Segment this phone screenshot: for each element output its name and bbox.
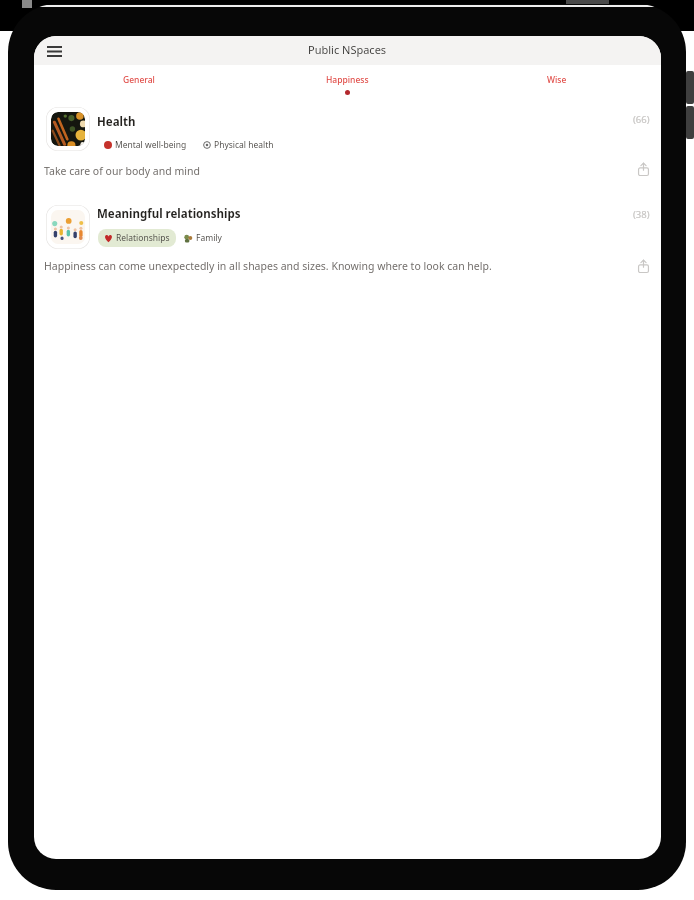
staticText: Happiness can come unexpectedly in all s… xyxy=(44,259,492,273)
button[interactable]: General xyxy=(34,65,243,96)
button[interactable]: Meaningful relationships xyxy=(34,199,661,316)
staticText: Physical health xyxy=(214,139,274,151)
staticText: Family xyxy=(196,232,222,244)
button[interactable]: Health xyxy=(34,103,661,199)
button[interactable]: Wise xyxy=(452,65,661,96)
staticText: Wise xyxy=(547,74,567,86)
button[interactable] xyxy=(634,160,652,178)
staticText: Happiness xyxy=(326,74,369,86)
staticText: Mental well-being xyxy=(115,139,187,151)
staticText: Meaningful relationships xyxy=(97,206,241,222)
button[interactable]: Happiness xyxy=(243,65,452,96)
staticText: Relationships xyxy=(116,232,170,244)
staticText: Public NSpaces xyxy=(308,42,387,57)
staticText: (66) xyxy=(633,113,650,126)
staticText: General xyxy=(123,74,155,86)
button[interactable] xyxy=(634,257,652,275)
button[interactable] xyxy=(42,39,66,63)
staticText: (38) xyxy=(633,208,650,221)
staticText: Health xyxy=(97,114,136,130)
staticText: Take care of our body and mind xyxy=(44,164,200,178)
